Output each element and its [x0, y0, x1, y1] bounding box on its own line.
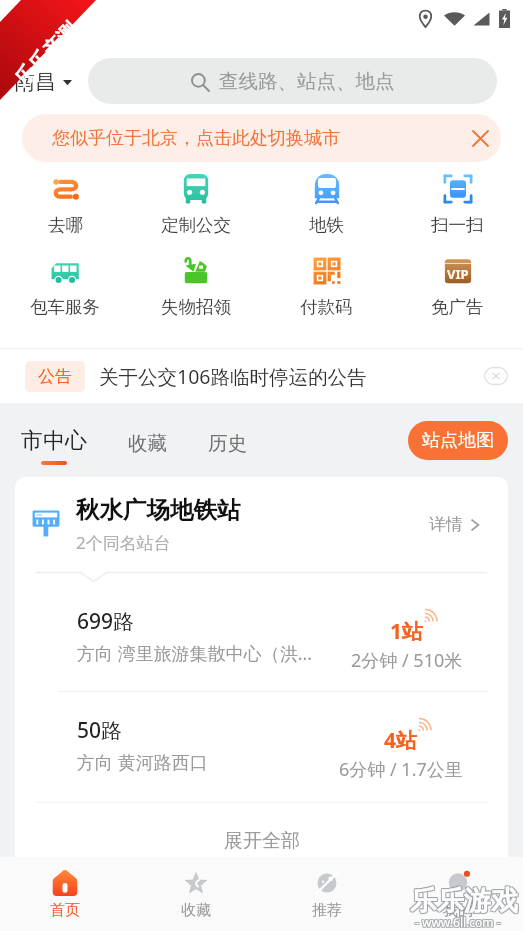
staticText: 乐乐游戏	[409, 885, 517, 919]
staticText: 您似乎位于北京，点击此处切换城市	[52, 127, 340, 150]
button[interactable]: 查线路、站点、地点	[88, 58, 497, 104]
staticText: 乐乐游戏	[410, 884, 518, 918]
staticText: 历史	[208, 431, 247, 456]
staticText: 乐乐游戏	[410, 885, 518, 919]
button[interactable]: 包车服务	[0, 252, 130, 321]
button[interactable]: 付款码	[261, 252, 392, 321]
button[interactable]: 收藏	[123, 428, 172, 459]
staticText: - www.6ll.com -	[415, 913, 501, 929]
staticText: VIP	[447, 265, 469, 283]
button[interactable]: 南昌	[14, 69, 76, 95]
button[interactable]: 推荐	[261, 857, 392, 931]
button[interactable]: 展开全部	[15, 803, 508, 879]
staticText: - www.6ll.com -	[416, 914, 502, 930]
button[interactable]: 秋水广场地铁站	[32, 477, 480, 571]
staticText: 南昌	[14, 69, 56, 95]
staticText: - www.6ll.com -	[414, 913, 500, 929]
staticText: 查线路、站点、地点	[219, 69, 395, 94]
button[interactable]: 定制公交	[130, 170, 261, 239]
staticText: - www.6ll.com -	[416, 913, 502, 929]
staticText: 方向 黄河路西口	[77, 750, 208, 775]
button[interactable]: 市中心	[21, 427, 87, 465]
staticText: 方向 湾里旅游集散中心（洪…	[77, 641, 312, 666]
button[interactable]: 首页	[0, 857, 130, 931]
staticText: 收藏	[128, 431, 167, 456]
staticText: 关于公交106路临时停运的公告	[99, 363, 475, 390]
staticText: 失物招领	[161, 296, 231, 318]
staticText: 市中心	[21, 427, 87, 455]
staticText: 6分钟 / 1.7公里	[339, 757, 463, 782]
staticText: 乐乐游戏	[409, 883, 517, 917]
staticText: 乐乐游戏	[409, 884, 517, 918]
button[interactable]: 我的	[392, 857, 523, 931]
staticText: - www.6ll.com -	[416, 915, 502, 931]
staticText: 定制公交	[161, 214, 231, 236]
button[interactable]: 去哪	[0, 170, 130, 239]
staticText: 乐乐亲测	[9, 17, 83, 91]
staticText: - www.6ll.com -	[414, 915, 500, 931]
button[interactable]: 关闭	[466, 124, 494, 152]
staticText: 站点地图	[422, 429, 494, 452]
button[interactable]: VIP	[392, 252, 523, 321]
staticText: - www.6ll.com -	[415, 914, 501, 930]
button[interactable]: 公告	[0, 349, 523, 403]
button[interactable]: 关闭公告	[483, 366, 509, 386]
staticText: 包车服务	[30, 296, 100, 318]
staticText: 免广告	[431, 296, 484, 318]
staticText: 乐乐游戏	[411, 885, 519, 919]
button[interactable]: 失物招领	[130, 252, 261, 321]
staticText: - www.6ll.com -	[415, 915, 501, 931]
staticText: 公告	[38, 366, 72, 387]
staticText: 收藏	[181, 901, 211, 920]
staticText: 乐乐游戏	[411, 884, 519, 918]
staticText: 去哪	[48, 214, 83, 236]
staticText: 地铁	[309, 214, 344, 236]
staticText: 展开全部	[224, 829, 300, 853]
staticText: 详情	[429, 514, 463, 535]
button[interactable]: 50路	[77, 692, 463, 802]
button[interactable]: 699路	[77, 585, 463, 691]
button[interactable]: 地铁	[261, 170, 392, 239]
staticText: 4站	[384, 726, 418, 755]
staticText: 扫一扫	[431, 214, 484, 236]
button[interactable]: 站点地图	[408, 421, 508, 460]
button[interactable]: 收藏	[130, 857, 261, 931]
button[interactable]: 扫一扫	[392, 170, 523, 239]
button[interactable]: 历史	[203, 428, 252, 459]
staticText: 2分钟 / 510米	[351, 648, 463, 673]
staticText: 我的	[443, 901, 473, 920]
button[interactable]: 您似乎位于北京，点击此处切换城市	[22, 114, 501, 162]
staticText: 699路	[77, 607, 135, 636]
staticText: 首页	[50, 901, 80, 920]
staticText: 推荐	[312, 901, 342, 920]
staticText: 乐乐游戏	[411, 883, 519, 917]
staticText: 乐乐游戏	[410, 883, 518, 917]
staticText: - www.6ll.com -	[414, 914, 500, 930]
staticText: 1站	[390, 617, 424, 646]
staticText: 秋水广场地铁站	[76, 495, 241, 525]
staticText: 付款码	[300, 296, 353, 318]
staticText: 50路	[77, 716, 123, 745]
staticText: 2个同名站台	[76, 531, 171, 554]
